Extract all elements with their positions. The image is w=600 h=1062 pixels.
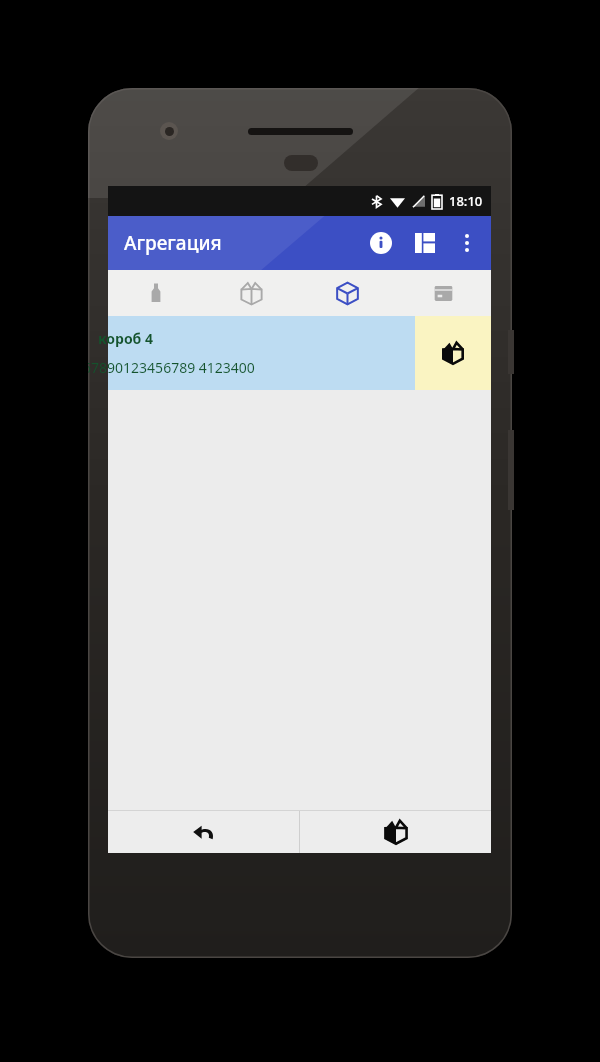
button[interactable]: Undo xyxy=(108,811,299,853)
button[interactable]: Box xyxy=(300,811,491,853)
button[interactable]: Tab xyxy=(299,270,395,316)
button[interactable]: Dashboard xyxy=(403,221,447,265)
button[interactable]: More options xyxy=(447,223,487,263)
button[interactable]: Tab xyxy=(203,270,299,316)
staticText: 01234567890123456789 4123400 xyxy=(88,358,255,377)
staticText: короб 4 xyxy=(98,329,154,348)
button[interactable]: Tab xyxy=(108,270,203,316)
staticText: 18:10 xyxy=(449,192,483,210)
button[interactable]: Info xyxy=(359,221,403,265)
button[interactable]: Tab xyxy=(395,270,491,316)
button[interactable]: короб 4 xyxy=(108,316,491,390)
staticText: Агрегация xyxy=(124,230,222,256)
